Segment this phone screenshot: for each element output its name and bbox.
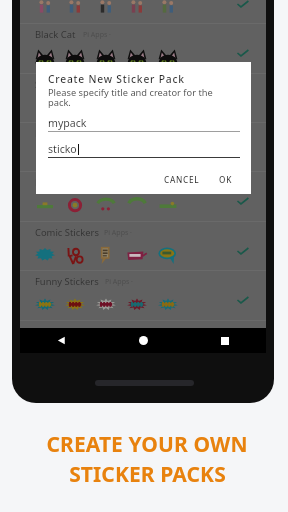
staticText: Pi Apps · xyxy=(68,129,96,139)
button[interactable]: Recent apps xyxy=(184,328,266,353)
staticText: Hearts xyxy=(35,127,65,140)
staticText: STICKER PACKS xyxy=(69,460,226,489)
button[interactable]: Comic Stickers xyxy=(20,221,266,270)
button[interactable]: Funny Stickers xyxy=(20,270,266,319)
staticText: Please specify title and creator for the… xyxy=(48,86,214,108)
staticText: Pi Apps · xyxy=(83,30,111,40)
button[interactable]: OK xyxy=(217,174,235,185)
button[interactable]: Back xyxy=(20,328,102,353)
button[interactable]: Hearts xyxy=(20,122,266,171)
button[interactable]: CANCEL xyxy=(162,174,202,185)
staticText: Create New Sticker Pack xyxy=(48,72,185,86)
staticText: Comic Stickers xyxy=(35,226,99,239)
staticText: Holiday xyxy=(35,176,69,189)
staticText: OK xyxy=(219,174,233,185)
button[interactable]: mypack xyxy=(48,116,240,132)
staticText: Smileys xyxy=(35,78,69,91)
button[interactable]: Home xyxy=(102,328,184,353)
staticText: mypack xyxy=(48,116,87,130)
staticText: CREATE YOUR OWN xyxy=(46,430,248,459)
button[interactable]: Holiday xyxy=(20,171,266,220)
staticText: Funny Stickers xyxy=(35,275,99,288)
staticText: Pi Apps · xyxy=(104,228,132,238)
staticText: Black Cat xyxy=(35,28,76,41)
staticText: CANCEL xyxy=(164,174,200,185)
staticText: sticko xyxy=(48,142,77,156)
button[interactable]: Black Cat xyxy=(20,23,266,72)
button[interactable]: Smileys xyxy=(20,73,266,122)
button[interactable]: Couples xyxy=(20,0,266,23)
staticText: Pi Apps · xyxy=(73,80,101,90)
staticText: Pi Apps · xyxy=(105,277,133,287)
button[interactable]: sticko xyxy=(48,142,240,158)
